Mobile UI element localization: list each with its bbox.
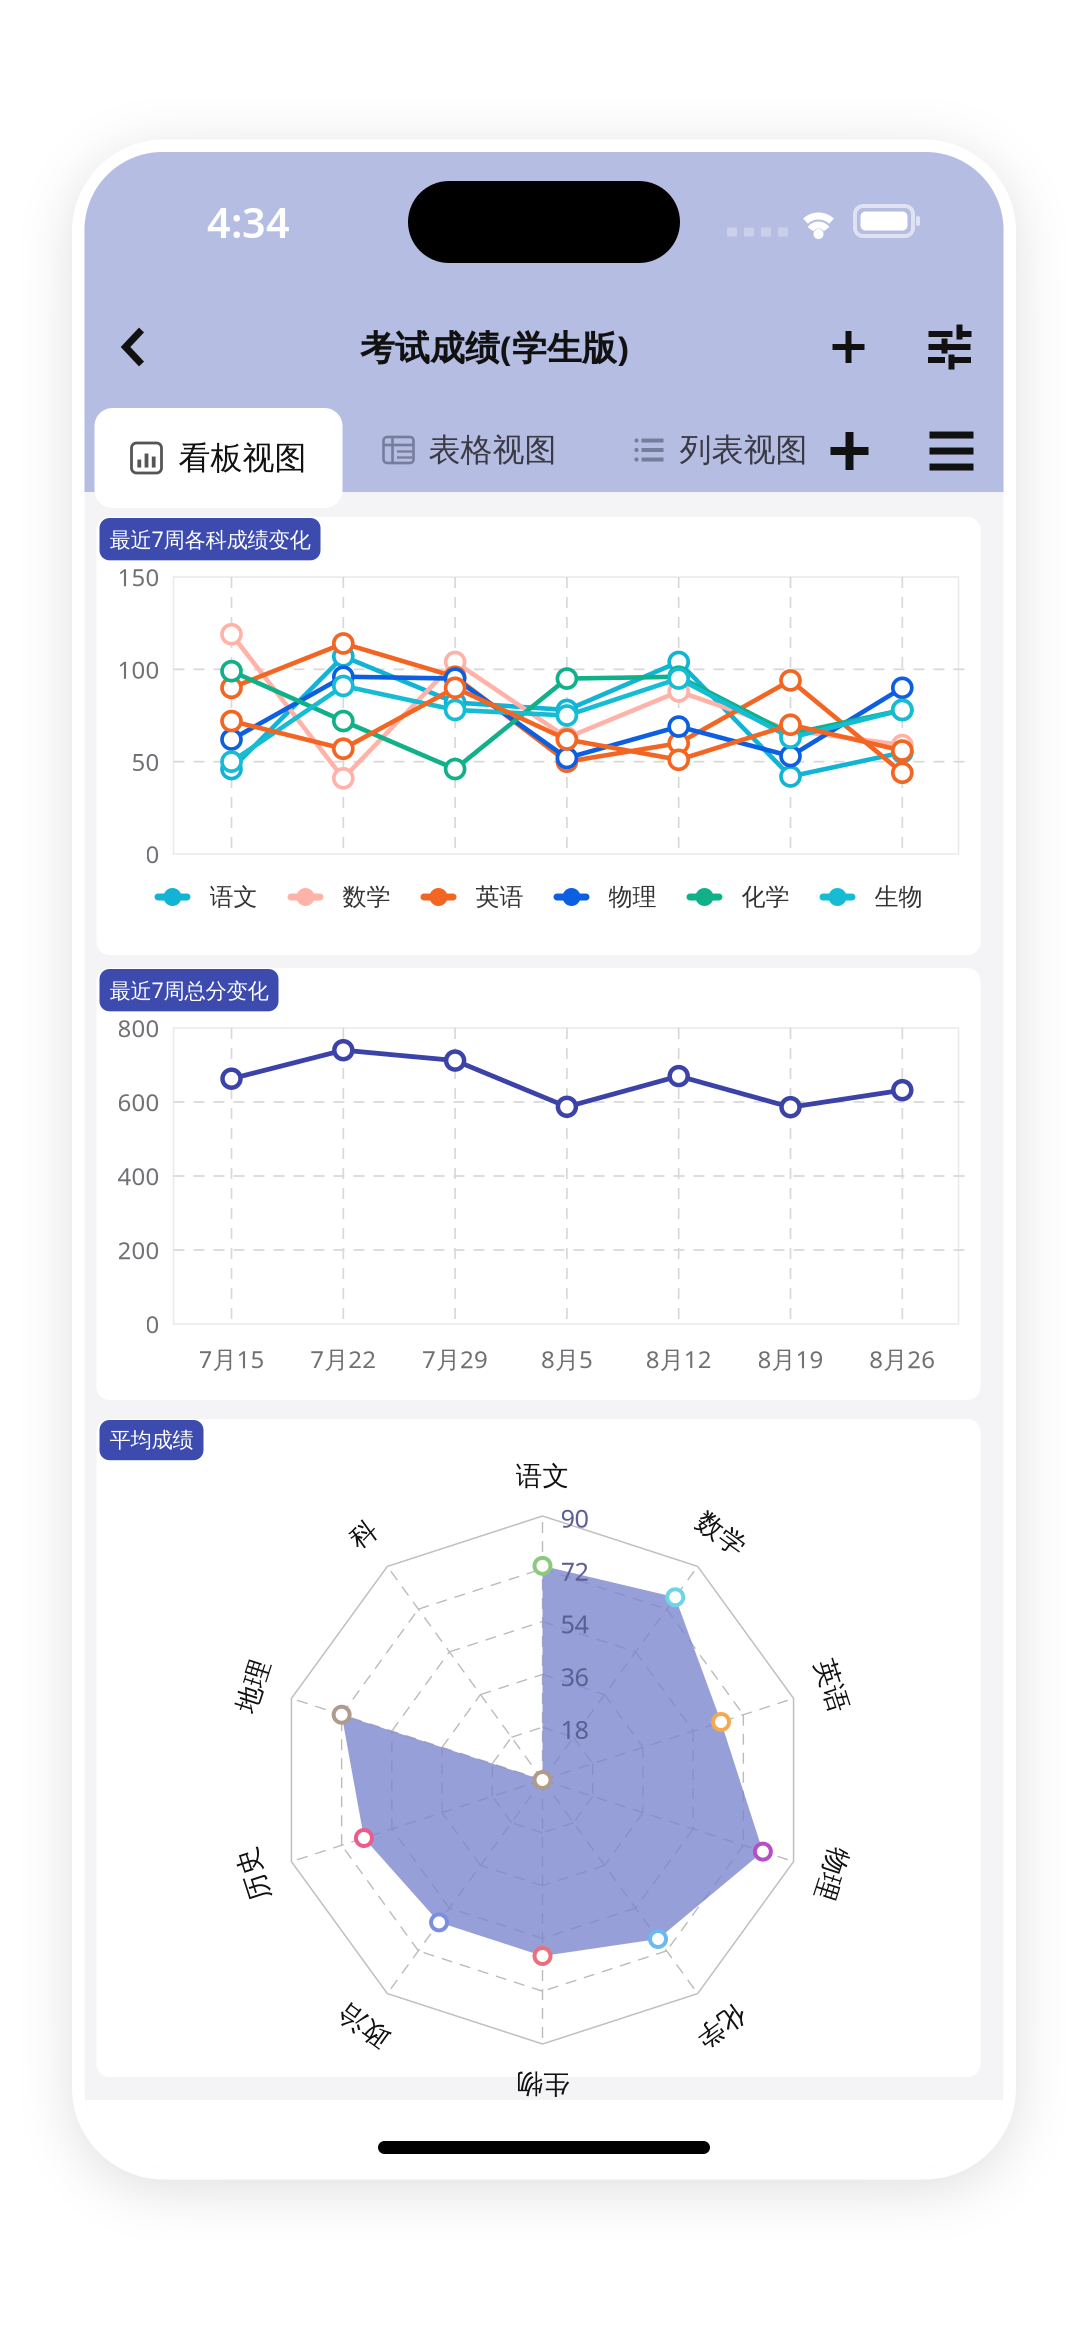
staticText: 数学 <box>342 882 390 912</box>
staticText: 英语 <box>805 1670 859 1702</box>
staticText: 历史 <box>226 1858 280 1890</box>
staticText: 200 <box>117 1234 159 1266</box>
staticText: 生物 <box>515 2068 569 2100</box>
button[interactable]: 看板视图 <box>94 408 342 508</box>
staticText: 400 <box>117 1160 159 1192</box>
staticText: 8月5 <box>541 1343 593 1375</box>
staticText: 最近7周总分变化 <box>109 976 268 1004</box>
staticText: 生物 <box>874 882 922 912</box>
button[interactable]: 列表视图 <box>633 408 811 492</box>
staticText: 科 <box>350 1518 377 1550</box>
staticText: 4:34 <box>207 195 290 249</box>
button[interactable]: 表格视图 <box>382 408 560 492</box>
button[interactable]: 更多 <box>909 409 993 493</box>
staticText: 英语 <box>475 882 523 912</box>
staticText: 7月22 <box>310 1343 376 1375</box>
staticText: 600 <box>117 1086 159 1118</box>
button[interactable]: 添加 <box>804 303 892 391</box>
staticText: 150 <box>117 561 159 593</box>
staticText: 语文 <box>209 882 257 912</box>
staticText: 列表视图 <box>679 430 807 470</box>
staticText: 物理 <box>608 882 656 912</box>
staticText: 54 <box>560 1607 588 1640</box>
staticText: 7月29 <box>422 1343 488 1375</box>
staticText: 50 <box>131 746 159 778</box>
staticText: 考试成绩(学生版) <box>360 324 629 370</box>
button[interactable]: 返回 <box>89 303 177 391</box>
staticText: 100 <box>117 653 159 685</box>
staticText: 政治 <box>337 2010 391 2042</box>
staticText: 8月19 <box>757 1343 823 1375</box>
staticText: 36 <box>560 1660 588 1693</box>
staticText: 地理 <box>226 1670 280 1702</box>
staticText: 表格视图 <box>428 430 556 470</box>
staticText: 0 <box>145 1308 159 1340</box>
staticText: 72 <box>560 1554 588 1588</box>
staticText: 800 <box>117 1012 159 1044</box>
staticText: 看板视图 <box>178 438 306 478</box>
button[interactable]: 筛选 <box>906 303 994 391</box>
staticText: 18 <box>560 1712 588 1746</box>
staticText: 90 <box>560 1501 588 1535</box>
staticText: 语文 <box>515 1460 569 1492</box>
staticText: 8月12 <box>646 1343 712 1375</box>
staticText: 8月26 <box>869 1343 935 1375</box>
button[interactable]: 添加视图 <box>807 409 891 493</box>
staticText: 平均成绩 <box>109 1427 193 1453</box>
staticText: 化学 <box>741 882 789 912</box>
staticText: 7月15 <box>198 1343 264 1375</box>
staticText: 物理 <box>805 1858 859 1890</box>
staticText: 0 <box>145 838 159 870</box>
staticText: 最近7周各科成绩变化 <box>109 525 310 553</box>
staticText: 化学 <box>694 2010 748 2042</box>
staticText: 数学 <box>694 1518 748 1550</box>
